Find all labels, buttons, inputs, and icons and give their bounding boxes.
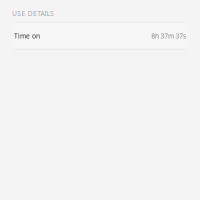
staticText: USE DETAILS	[12, 9, 54, 18]
button[interactable]: Time on	[13, 22, 187, 50]
staticText: 8h 37m 37s	[151, 31, 186, 40]
staticText: Time on	[14, 31, 40, 40]
